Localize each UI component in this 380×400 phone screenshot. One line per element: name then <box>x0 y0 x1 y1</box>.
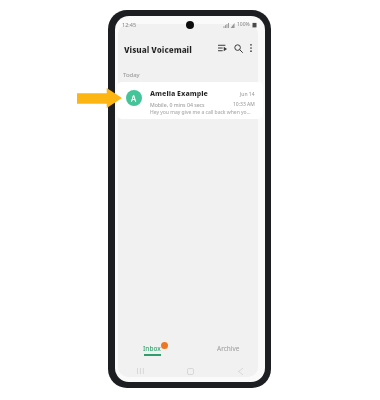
button[interactable]: Play all <box>215 40 229 56</box>
button[interactable]: Back <box>215 362 265 380</box>
staticText: Jun 14 <box>240 91 255 98</box>
staticText: 10:33 AM <box>233 101 255 108</box>
staticText: Amelia Example <box>150 89 208 99</box>
button[interactable]: More options <box>245 40 257 56</box>
button[interactable]: Recent apps <box>115 362 165 380</box>
staticText: 12:45 <box>122 21 137 28</box>
button[interactable]: Home <box>165 362 215 380</box>
button[interactable]: Archive <box>208 338 248 362</box>
button[interactable]: Search <box>231 40 245 56</box>
staticText: Today <box>123 71 140 79</box>
staticText: Archive <box>217 344 240 353</box>
staticText: 100% <box>237 21 250 28</box>
staticText: Mobile, 0 mins 04 secs <box>150 101 205 108</box>
staticText: Visual Voicemail <box>124 44 192 55</box>
button[interactable]: Inbox <box>135 338 175 362</box>
button[interactable]: A <box>117 82 263 119</box>
staticText: Inbox <box>143 344 161 353</box>
staticText: Hey you may give me a call back when yo.… <box>150 109 251 116</box>
staticText: A <box>131 93 137 104</box>
